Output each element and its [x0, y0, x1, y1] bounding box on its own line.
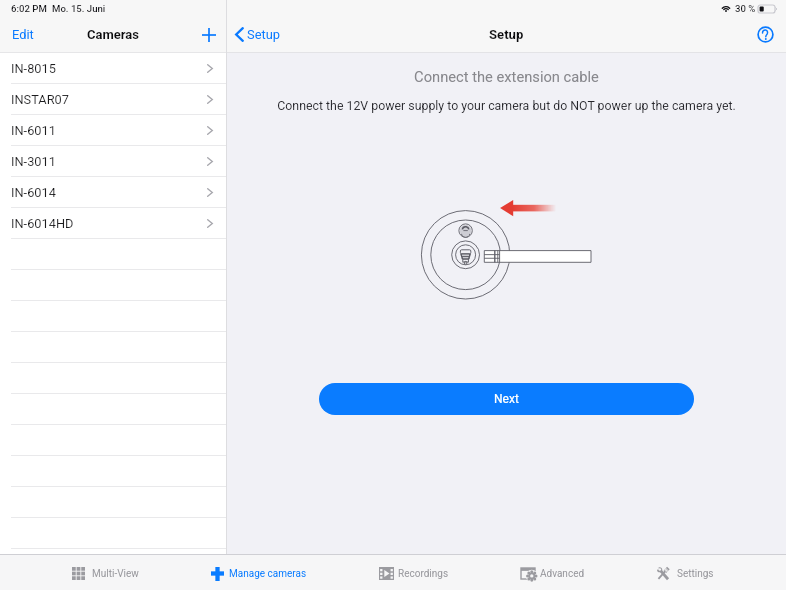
button[interactable]: Help: [745, 17, 786, 52]
staticText: Connect the 12V power supply to your cam…: [227, 99, 786, 113]
button[interactable]: Settings: [657, 557, 714, 590]
staticText: Settings: [677, 568, 714, 580]
button[interactable]: IN-6014HD: [0, 208, 226, 239]
staticText: INSTAR07: [11, 92, 69, 107]
staticText: IN-3011: [11, 154, 56, 169]
staticText: Setup: [247, 27, 281, 42]
button[interactable]: IN-6011: [0, 115, 226, 146]
staticText: Mo. 15. Juni: [52, 3, 106, 14]
staticText: Setup: [489, 27, 524, 42]
button[interactable]: IN-8015: [0, 53, 226, 84]
staticText: Edit: [12, 27, 34, 42]
staticText: Multi-View: [92, 568, 139, 580]
staticText: IN-6014HD: [11, 216, 74, 231]
button[interactable]: Advanced: [521, 557, 585, 590]
staticText: IN-6011: [11, 123, 56, 138]
button[interactable]: IN-6014: [0, 177, 226, 208]
staticText: 30 %: [735, 3, 756, 14]
staticText: IN-6014: [11, 185, 56, 200]
button[interactable]: Multi-View: [72, 557, 139, 590]
button[interactable]: Manage cameras: [211, 557, 307, 590]
button[interactable]: Edit: [0, 17, 46, 52]
staticText: Cameras: [87, 27, 139, 42]
button[interactable]: Setup: [227, 17, 291, 52]
staticText: Connect the extension cable: [227, 68, 786, 85]
staticText: Advanced: [540, 568, 585, 580]
staticText: 6:02 PM: [11, 3, 47, 14]
button[interactable]: Next: [319, 383, 694, 415]
button[interactable]: Recordings: [379, 557, 449, 590]
staticText: Recordings: [398, 568, 449, 580]
button[interactable]: Add camera: [190, 17, 226, 52]
staticText: Manage cameras: [229, 568, 307, 580]
button[interactable]: IN-3011: [0, 146, 226, 177]
staticText: Next: [494, 392, 519, 406]
staticText: IN-8015: [11, 61, 56, 76]
button[interactable]: INSTAR07: [0, 84, 226, 115]
